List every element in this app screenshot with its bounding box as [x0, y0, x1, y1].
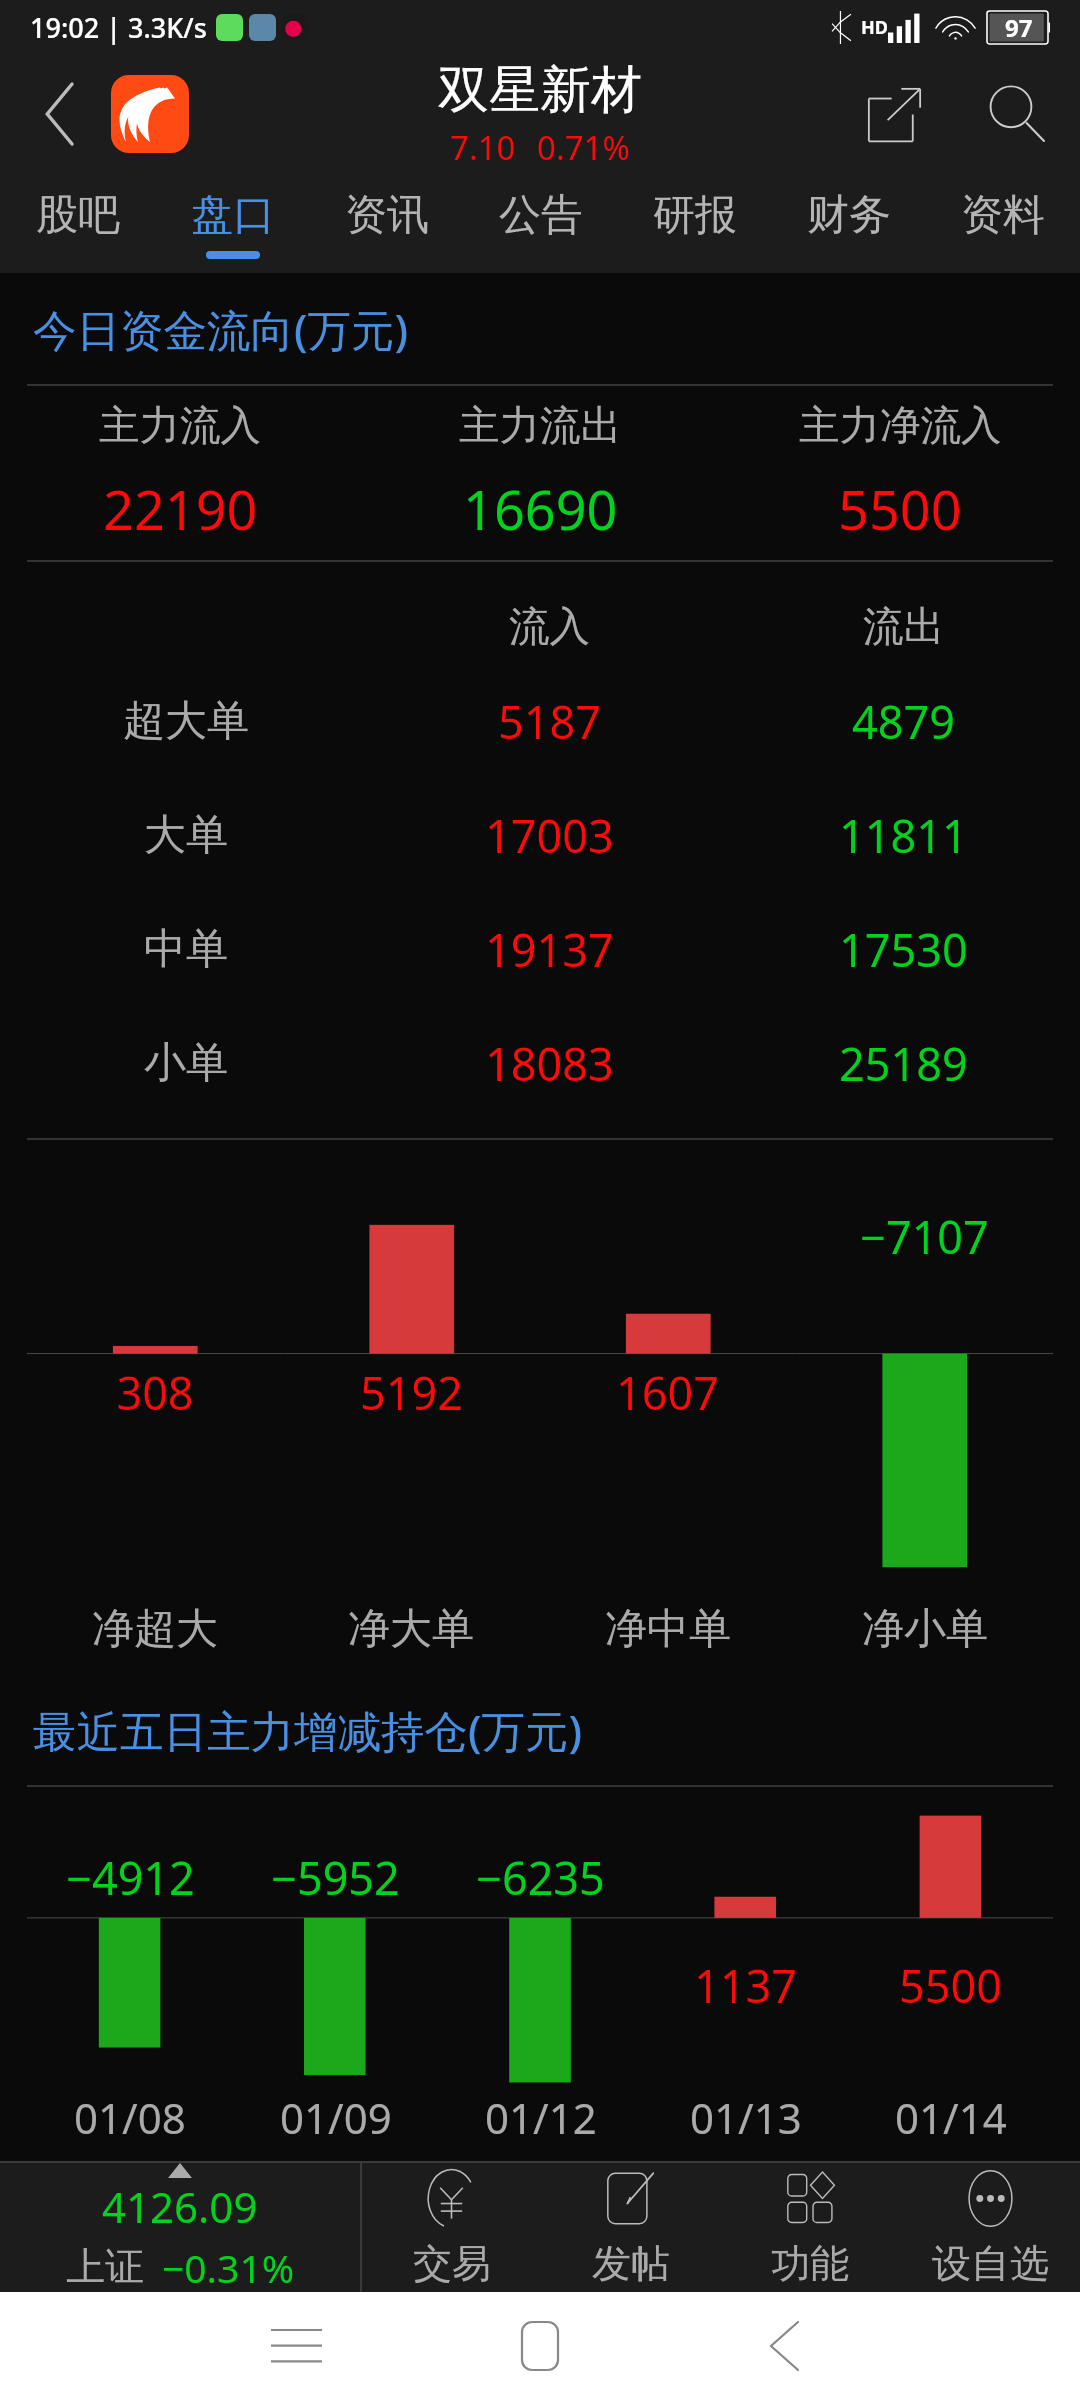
staticText: 22190 — [103, 472, 258, 546]
staticText: 19:02 | 3.3K/s — [30, 9, 207, 46]
button[interactable]: Recents — [174, 2292, 418, 2400]
staticText: HD — [861, 15, 888, 40]
staticText: 最近五日主力增减持仓(万元) — [33, 1700, 583, 1759]
button[interactable]: Search — [954, 54, 1080, 174]
staticText: 功能 — [771, 2239, 849, 2288]
button[interactable]: 小单 — [0, 1006, 1080, 1120]
button[interactable]: 股吧 — [0, 174, 155, 273]
staticText: 资料 — [961, 189, 1045, 242]
staticText: 净大单 — [348, 1603, 474, 1656]
staticText: 19137 — [485, 919, 614, 980]
staticText: 今日资金流向(万元) — [33, 299, 409, 358]
staticText: 17530 — [839, 919, 968, 980]
staticText: 超大单 — [123, 695, 249, 748]
staticText: 5500 — [838, 472, 962, 546]
staticText: 16690 — [463, 472, 618, 546]
staticText: 5500 — [899, 1955, 1002, 2016]
staticText: 18083 — [485, 1033, 614, 1094]
button[interactable]: Back — [0, 54, 120, 174]
staticText: 25189 — [839, 1033, 968, 1094]
staticText: 01/09 — [280, 2089, 392, 2146]
button[interactable]: 盘口 — [155, 174, 310, 273]
button[interactable]: Share — [834, 54, 954, 174]
button[interactable]: Home — [418, 2292, 662, 2400]
staticText: 资讯 — [345, 189, 429, 242]
staticText: 97 — [1005, 11, 1033, 44]
staticText: 主力流出 — [459, 400, 621, 451]
staticText: 1607 — [616, 1362, 719, 1423]
staticText: 中单 — [144, 923, 228, 976]
staticText: 主力流入 — [99, 400, 261, 451]
staticText: 研报 — [653, 189, 737, 242]
button[interactable]: 发帖 — [541, 2163, 720, 2292]
staticText: 01/08 — [74, 2089, 186, 2146]
button[interactable]: 中单 — [0, 892, 1080, 1006]
staticText: 主力净流入 — [799, 400, 1002, 451]
button[interactable]: 资料 — [926, 174, 1080, 273]
staticText: 4879 — [852, 691, 955, 752]
staticText: −4912 — [66, 1847, 195, 1908]
staticText: −6235 — [476, 1847, 605, 1908]
staticText: 财务 — [807, 189, 891, 242]
button[interactable]: 设自选 — [900, 2163, 1080, 2292]
button[interactable]: 超大单 — [0, 664, 1080, 778]
staticText: 净中单 — [605, 1603, 731, 1656]
button[interactable]: 4126.09 — [0, 2163, 360, 2292]
staticText: 净小单 — [862, 1603, 988, 1656]
staticText: 01/12 — [485, 2089, 597, 2146]
staticText: 上证 — [66, 2242, 144, 2291]
staticText: 流出 — [863, 601, 944, 652]
button[interactable]: 功能 — [720, 2163, 900, 2292]
staticText: 股吧 — [36, 189, 120, 242]
staticText: 大单 — [144, 809, 228, 862]
staticText: 1137 — [694, 1955, 797, 2016]
staticText: 盘口 — [191, 189, 275, 242]
staticText: 11811 — [839, 805, 968, 866]
staticText: 01/13 — [690, 2089, 802, 2146]
button[interactable]: Back — [662, 2292, 906, 2400]
button[interactable]: 大单 — [0, 778, 1080, 892]
button[interactable]: 交易 — [362, 2163, 541, 2292]
staticText: 设自选 — [932, 2239, 1049, 2288]
staticText: 发帖 — [592, 2239, 670, 2288]
staticText: −7107 — [860, 1206, 989, 1267]
button[interactable]: 研报 — [618, 174, 772, 273]
staticText: 小单 — [144, 1037, 228, 1090]
staticText: −5952 — [271, 1847, 400, 1908]
staticText: 7.10 — [450, 125, 516, 170]
staticText: 0.71% — [537, 125, 630, 170]
staticText: 01/14 — [895, 2089, 1007, 2146]
button[interactable]: 公告 — [464, 174, 618, 273]
button[interactable]: 资讯 — [310, 174, 464, 273]
button[interactable]: 财务 — [772, 174, 926, 273]
staticText: 17003 — [485, 805, 614, 866]
staticText: 交易 — [413, 2239, 491, 2288]
button[interactable]: App logo — [111, 75, 189, 153]
staticText: 双星新材 — [438, 58, 642, 122]
staticText: 5187 — [498, 691, 601, 752]
staticText: 流入 — [509, 601, 590, 652]
staticText: −0.31% — [162, 2241, 295, 2292]
staticText: 5192 — [360, 1362, 463, 1423]
staticText: 公告 — [499, 189, 583, 242]
staticText: 308 — [116, 1362, 194, 1423]
staticText: 净超大 — [92, 1603, 218, 1656]
staticText: 4126.09 — [102, 2178, 258, 2235]
